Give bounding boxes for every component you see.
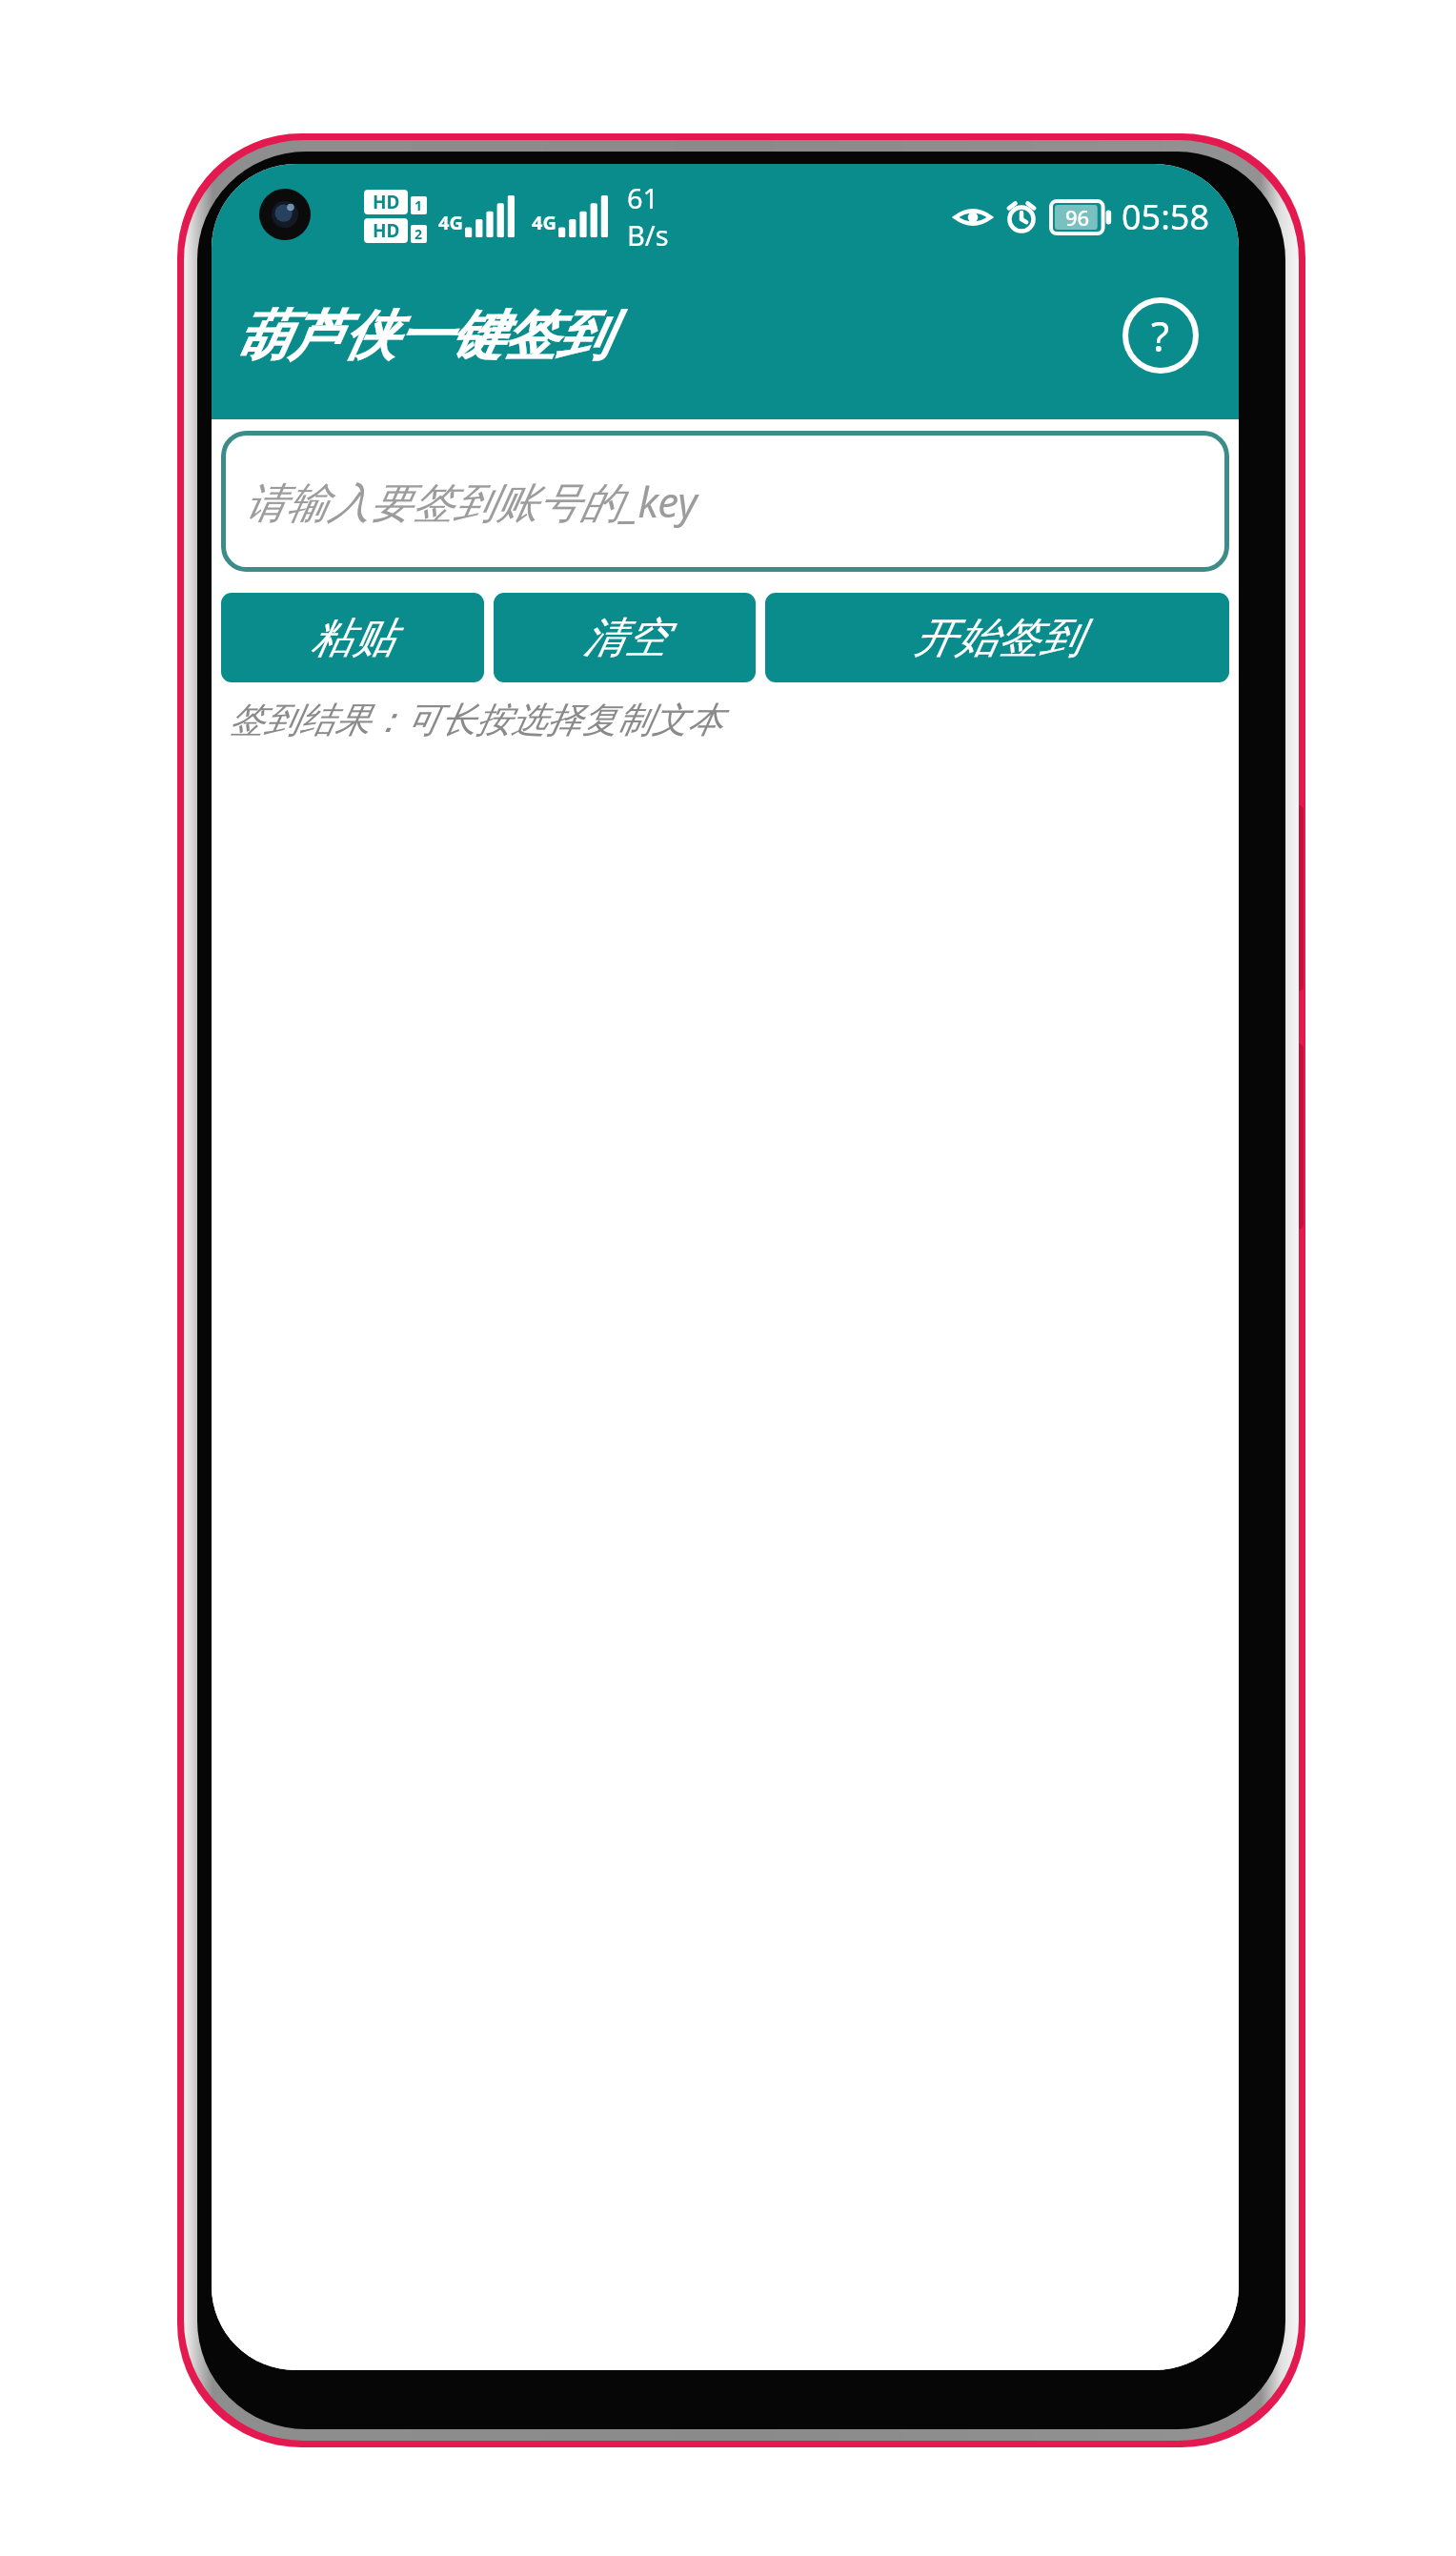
button[interactable]: Help <box>1121 295 1201 375</box>
staticText: 96 <box>1065 203 1090 232</box>
staticText: 清空 <box>583 612 667 664</box>
staticText: HD <box>373 190 400 214</box>
staticText: 05:58 <box>1122 193 1210 240</box>
staticText: 61 <box>627 179 659 216</box>
button[interactable]: 开始签到 <box>765 593 1229 682</box>
staticText: 葫芦侠一键签到 <box>236 302 610 370</box>
staticText: B/s <box>627 216 669 254</box>
staticText: 请输入要签到账号的_key <box>244 473 698 530</box>
staticText: 开始签到 <box>914 612 1082 664</box>
button[interactable]: 粘贴 <box>221 593 484 682</box>
button[interactable]: 请输入要签到账号的_key <box>221 431 1229 572</box>
other: Eye comfort <box>954 204 992 231</box>
staticText: HD <box>373 218 400 243</box>
staticText: 4G <box>438 210 463 235</box>
staticText: ? <box>1151 307 1170 364</box>
other: Alarm <box>1005 201 1038 233</box>
staticText: 粘贴 <box>311 612 394 664</box>
button[interactable]: 清空 <box>494 593 756 682</box>
staticText: 4G <box>532 210 556 235</box>
staticText: 签到结果：可长按选择复制文本 <box>229 698 722 742</box>
staticText: 1 <box>415 196 423 214</box>
staticText: 2 <box>415 225 423 243</box>
